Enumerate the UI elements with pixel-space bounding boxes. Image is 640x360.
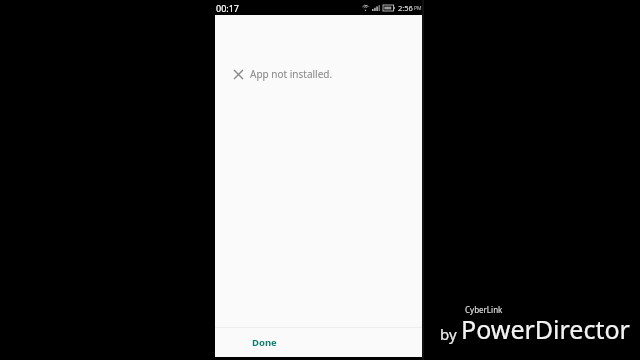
button[interactable]: Done bbox=[248, 332, 281, 353]
staticText: 2:56 bbox=[398, 3, 413, 13]
staticText: PowerDirector bbox=[461, 312, 630, 346]
staticText: by bbox=[440, 324, 457, 344]
staticText: PM bbox=[414, 5, 422, 12]
staticText: CyberLink bbox=[465, 304, 503, 315]
staticText: App not installed. bbox=[250, 67, 333, 81]
staticText: Done bbox=[252, 336, 277, 349]
staticText: 00:17 bbox=[216, 2, 240, 14]
